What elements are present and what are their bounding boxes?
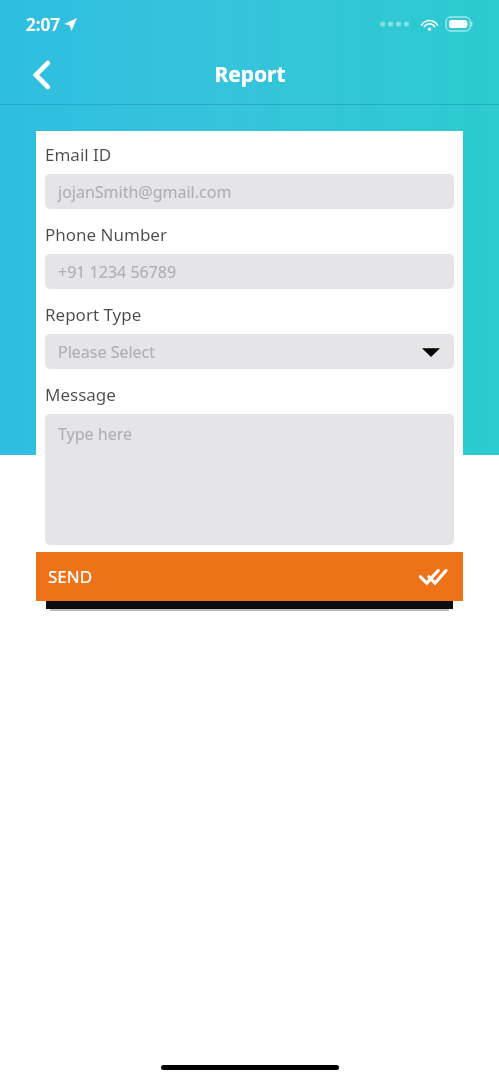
staticText: jojanSmith@gmail.com — [58, 181, 232, 203]
staticText: Email ID — [45, 143, 112, 166]
button[interactable]: SEND — [36, 552, 463, 601]
staticText: Message — [45, 383, 116, 406]
staticText: Report Type — [45, 303, 142, 326]
button[interactable]: Back — [20, 53, 64, 97]
staticText: Type here — [58, 423, 132, 445]
button[interactable]: Please Select — [45, 334, 454, 369]
staticText: +91 1234 56789 — [58, 261, 177, 283]
staticText: SEND — [48, 565, 93, 588]
button[interactable]: +91 1234 56789 — [45, 254, 454, 289]
staticText: Report — [214, 60, 286, 89]
button[interactable]: Type here — [45, 414, 454, 545]
staticText: Please Select — [58, 341, 156, 363]
staticText: Phone Number — [45, 223, 167, 246]
button[interactable]: jojanSmith@gmail.com — [45, 174, 454, 209]
staticText: 2:07 — [26, 13, 60, 36]
